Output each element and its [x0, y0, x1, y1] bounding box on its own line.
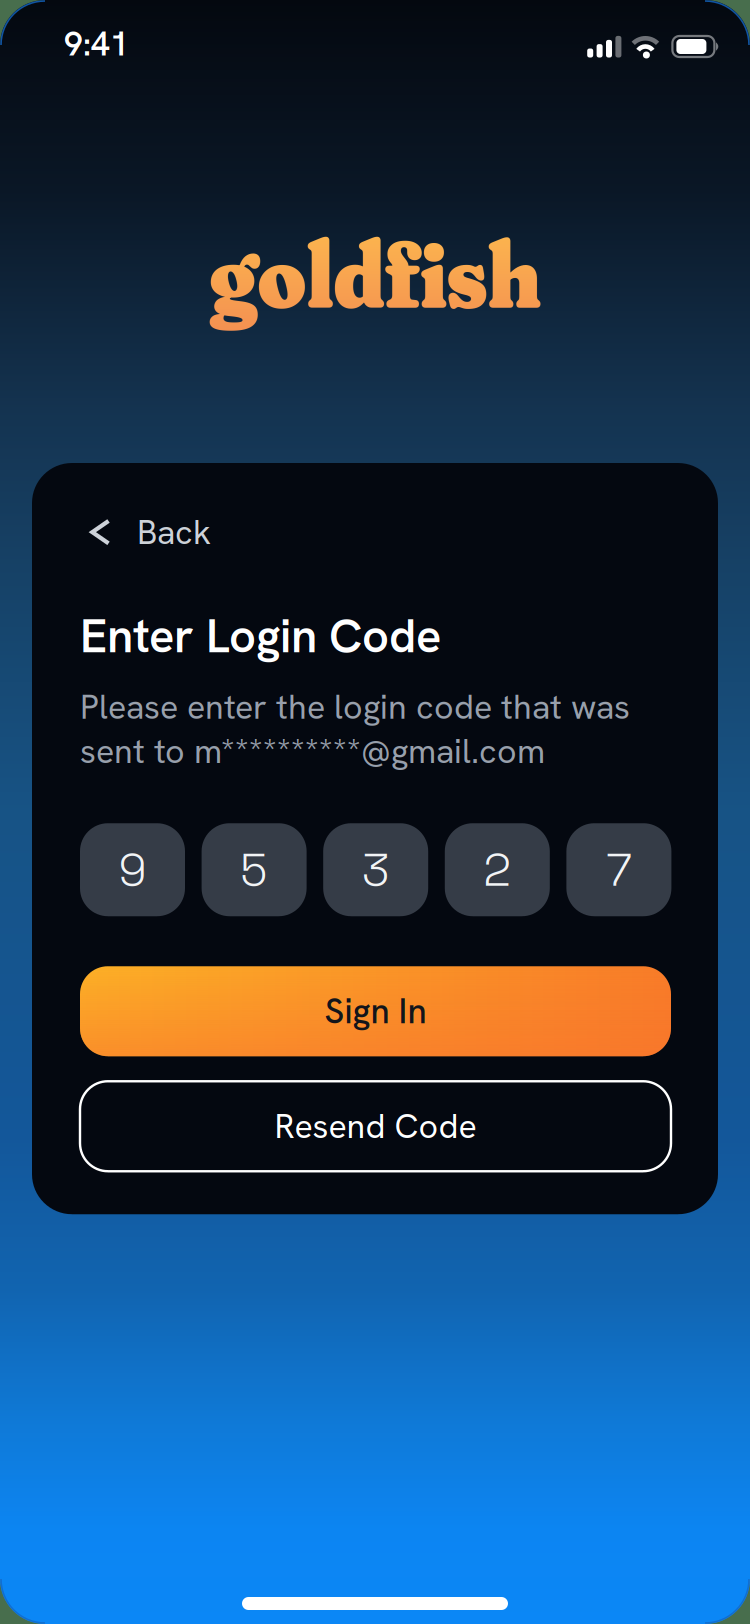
- staticText: 5: [240, 840, 268, 899]
- staticText: 9: [118, 840, 146, 899]
- button[interactable]: 7: [566, 823, 671, 916]
- staticText: 9:41: [64, 22, 129, 66]
- staticText: 3: [362, 840, 390, 899]
- staticText: Sign In: [324, 989, 426, 1034]
- button[interactable]: 5: [202, 823, 307, 916]
- button[interactable]: 2: [445, 823, 550, 916]
- button[interactable]: 9: [80, 823, 185, 916]
- staticText: Enter Login Code: [80, 605, 441, 667]
- staticText: Back: [137, 510, 211, 554]
- button[interactable]: Back: [80, 510, 211, 554]
- staticText: 7: [606, 840, 632, 899]
- staticText: 2: [483, 840, 511, 899]
- button[interactable]: Sign In: [80, 966, 671, 1056]
- button[interactable]: 3: [323, 823, 428, 916]
- button[interactable]: Resend Code: [80, 1081, 671, 1171]
- staticText: Please enter the login code that was sen…: [80, 685, 630, 773]
- staticText: Resend Code: [274, 1104, 476, 1148]
